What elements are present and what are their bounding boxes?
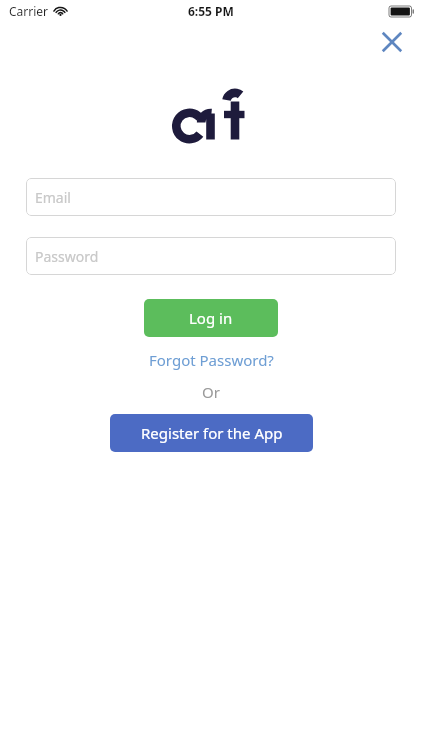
staticText: Log in [189, 308, 233, 328]
button[interactable]: Close [374, 24, 410, 60]
staticText: Register for the App [141, 423, 283, 443]
button[interactable]: Log in [144, 299, 278, 337]
button[interactable]: Forgot Password? [141, 347, 282, 373]
staticText: Forgot Password? [149, 350, 274, 370]
staticText: 6:55 PM [188, 3, 234, 19]
button[interactable]: Email [26, 178, 396, 216]
staticText: Password [35, 247, 99, 266]
staticText: Carrier [9, 3, 49, 19]
button[interactable]: Password [26, 237, 396, 275]
staticText: Email [35, 188, 71, 207]
staticText: Or [202, 382, 220, 402]
button[interactable]: Register for the App [110, 414, 313, 452]
